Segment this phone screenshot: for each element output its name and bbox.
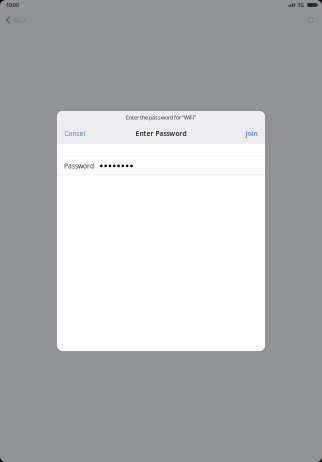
staticText: Password	[64, 161, 94, 170]
button[interactable]: Cancel	[57, 124, 95, 142]
staticText: Back	[13, 16, 28, 24]
staticText: Cancel	[64, 129, 85, 138]
staticText: Enter the password for “WiFi”	[126, 114, 196, 121]
button[interactable]: Back	[0, 10, 34, 30]
staticText: Join	[245, 129, 257, 138]
button[interactable]: Loading	[303, 10, 322, 30]
button[interactable]: Join	[235, 124, 265, 142]
staticText: 3G	[297, 1, 304, 9]
staticText: 10:00	[6, 1, 19, 9]
staticText: Enter Password	[135, 129, 186, 138]
